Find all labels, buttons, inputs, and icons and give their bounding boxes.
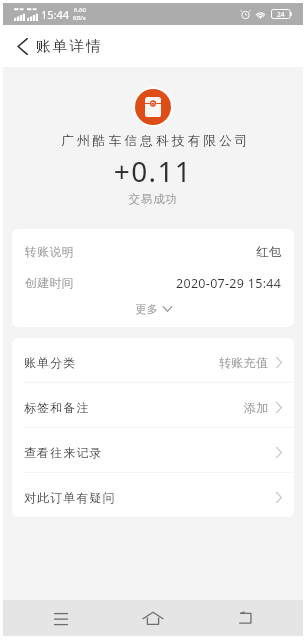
button[interactable]: Back xyxy=(199,600,291,636)
staticText: 标签和备注 xyxy=(24,400,90,415)
staticText: 红包 xyxy=(256,244,282,260)
button[interactable]: 查看往来记录 xyxy=(12,428,294,472)
staticText: 更多 xyxy=(135,302,158,316)
button[interactable]: 更多 xyxy=(12,296,294,327)
staticText: 2020-07-29 15:44 xyxy=(176,275,282,292)
staticText: 转账说明 xyxy=(25,245,74,260)
staticText: 交易成功 xyxy=(3,192,303,206)
staticText: 查看往来记录 xyxy=(24,445,103,460)
button[interactable]: Back xyxy=(11,31,33,61)
button[interactable]: 标签和备注 xyxy=(12,383,294,427)
staticText: 6.60 xyxy=(74,6,86,14)
staticText: KB/s xyxy=(73,14,86,22)
button[interactable]: Recent apps xyxy=(15,600,107,636)
button[interactable]: 账单分类 xyxy=(12,338,294,382)
staticText: 广州酷车信息科技有限公司 xyxy=(6,133,306,149)
button[interactable]: Home xyxy=(107,600,199,636)
staticText: 账单分类 xyxy=(24,355,77,370)
staticText: +0.11 xyxy=(3,152,303,190)
staticText: 账单详情 xyxy=(36,37,103,55)
button[interactable]: 对此订单有疑问 xyxy=(12,473,294,517)
staticText: 创建时间 xyxy=(25,276,74,291)
staticText: 对此订单有疑问 xyxy=(24,490,116,505)
staticText: 添加 xyxy=(244,400,269,415)
staticText: 15:44 xyxy=(41,7,70,22)
staticText: 24 xyxy=(277,10,285,19)
staticText: 转账充值 xyxy=(219,355,269,370)
